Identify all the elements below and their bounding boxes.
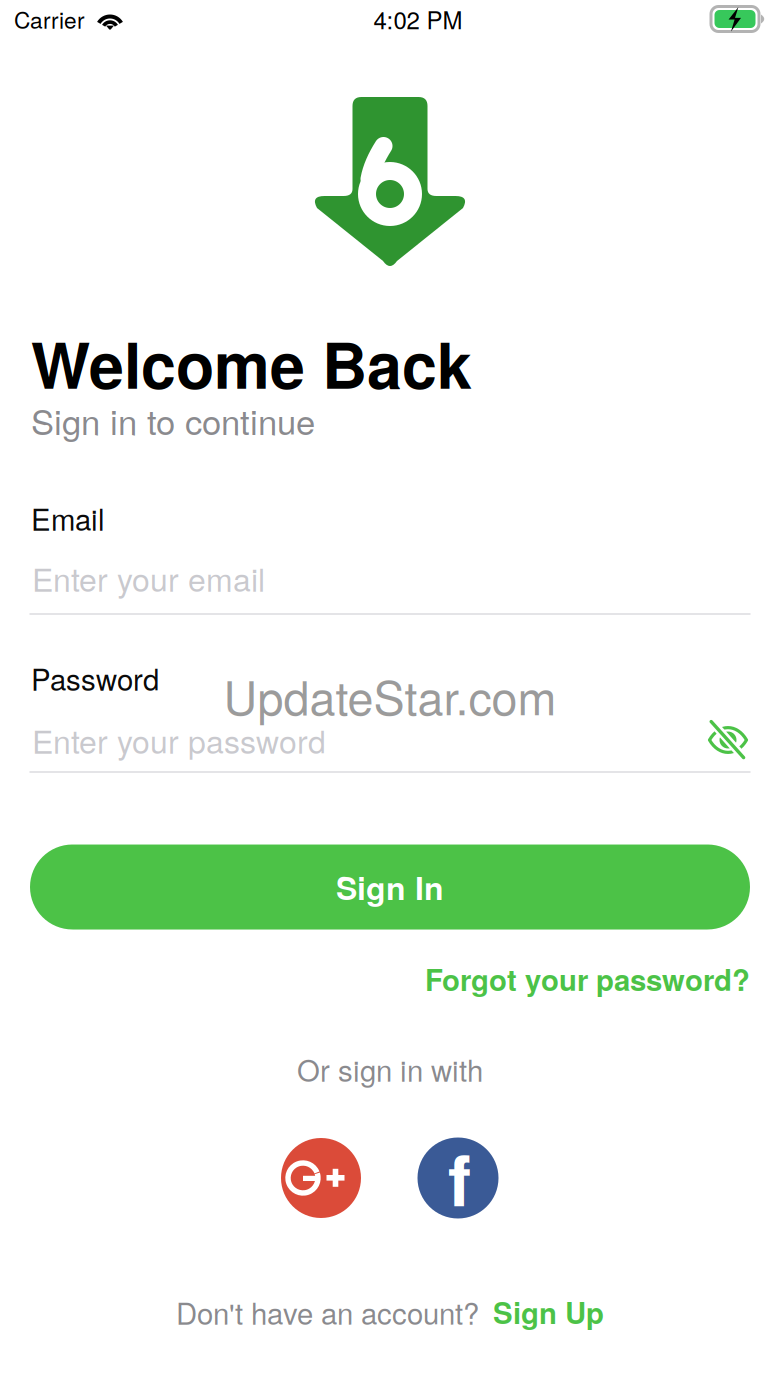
staticText: Password [31,657,159,699]
staticText: Welcome Back [31,318,472,408]
staticText: 4:02 PM [373,2,462,36]
staticText: Carrier [14,3,85,35]
staticText: UpdateStar.com [223,662,556,728]
button[interactable]: Show password [702,715,754,765]
staticText: Email [31,497,105,539]
button[interactable]: Forgot your password? [0,958,750,1000]
staticText: Enter your password [32,717,326,763]
staticText: Enter your email [32,555,265,601]
staticText: Forgot your password? [425,958,750,1000]
staticText: Sign Up [493,1291,604,1333]
staticText: Sign In [336,864,444,910]
staticText: Sign in to continue [31,395,315,445]
staticText: Don't have an account? [176,1291,479,1333]
staticText: Or sign in with [297,1048,483,1090]
button[interactable]: Sign in with Facebook [417,1137,498,1218]
staticText: f [448,1128,471,1228]
button[interactable]: Sign Up [479,1291,604,1333]
button[interactable]: Sign In [30,844,750,929]
button[interactable]: Sign in with Google [281,1138,361,1218]
